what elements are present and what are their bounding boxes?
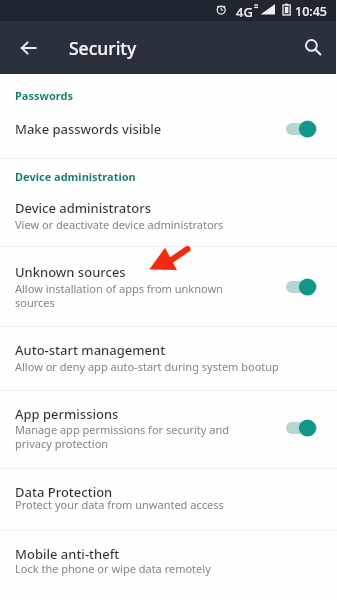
button[interactable] <box>0 476 337 528</box>
staticText: 4G <box>236 3 253 21</box>
staticText: 10:45 <box>295 3 328 20</box>
staticText: Device administration <box>15 169 136 184</box>
button[interactable]: Search <box>296 30 330 64</box>
staticText: Allow or deny app auto-start during syst… <box>15 359 279 374</box>
staticText: Make passwords visible <box>15 120 162 138</box>
staticText: Auto-start management <box>15 341 166 359</box>
staticText: Mobile anti-theft <box>15 545 120 563</box>
staticText: Unknown sources <box>15 263 126 281</box>
button[interactable] <box>0 108 337 152</box>
button[interactable]: Toggle <box>285 419 323 437</box>
staticText: View or deactivate device administrators <box>15 217 224 232</box>
button[interactable] <box>0 192 337 246</box>
staticText: App permissions <box>15 405 119 423</box>
button[interactable]: Back <box>10 30 46 66</box>
staticText: Data Protection <box>15 483 113 501</box>
button[interactable] <box>0 256 337 324</box>
button[interactable] <box>0 398 337 466</box>
staticText: Passwords <box>15 88 73 103</box>
staticText: Lock the phone or wipe data remotely <box>15 561 211 576</box>
staticText: Allow installation of apps from unknown … <box>15 281 223 310</box>
button[interactable]: Toggle <box>285 278 323 296</box>
button[interactable] <box>0 538 337 590</box>
button[interactable] <box>0 334 337 388</box>
button[interactable]: Toggle <box>285 120 323 138</box>
staticText: Device administrators <box>15 199 151 217</box>
staticText: Protect your data from unwanted access <box>15 497 224 512</box>
staticText: Security <box>69 36 137 60</box>
staticText: Manage app permissions for security and … <box>15 422 230 451</box>
